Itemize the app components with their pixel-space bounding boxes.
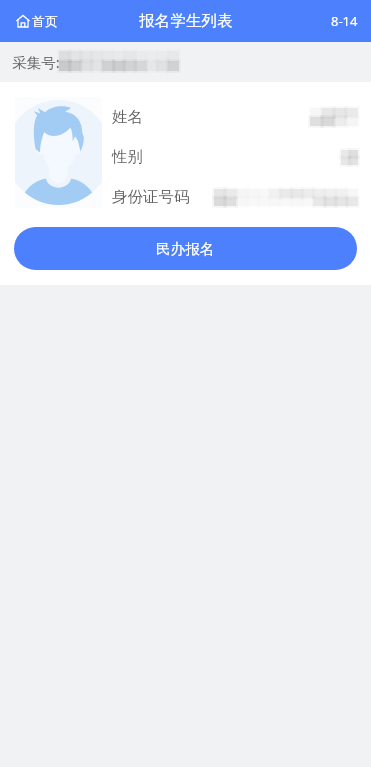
button[interactable]: 民办报名 — [14, 227, 357, 270]
staticText: 报名学生列表 — [139, 11, 233, 31]
staticText: 姓名 — [112, 107, 143, 127]
staticText: 8-14 — [331, 12, 358, 30]
button[interactable]: 8-14 — [318, 0, 371, 42]
staticText: 采集号: — [12, 52, 60, 72]
staticText: 民办报名 — [156, 240, 215, 258]
staticText: 性别 — [112, 147, 143, 167]
button[interactable]: Home — [0, 0, 66, 42]
staticText: 身份证号码 — [112, 187, 190, 207]
staticText: 首页 — [32, 13, 58, 29]
other: Home — [16, 14, 30, 28]
